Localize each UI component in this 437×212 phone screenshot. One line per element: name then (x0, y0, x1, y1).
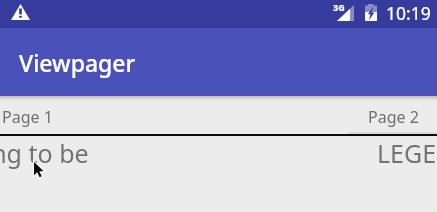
staticText: 10:19 (386, 1, 431, 25)
button[interactable]: Viewpager (0, 28, 437, 96)
button[interactable]: Page 1 (0, 96, 348, 135)
staticText: 3G (333, 1, 345, 13)
staticText: Page 1 (2, 106, 53, 128)
staticText: LEGENDARY (377, 136, 437, 170)
other: Warning (11, 4, 30, 20)
staticText: Viewpager (19, 47, 136, 78)
button[interactable]: Page 2 (348, 96, 437, 135)
staticText: Page 2 (368, 106, 419, 128)
staticText: This is going to be (0, 136, 89, 170)
